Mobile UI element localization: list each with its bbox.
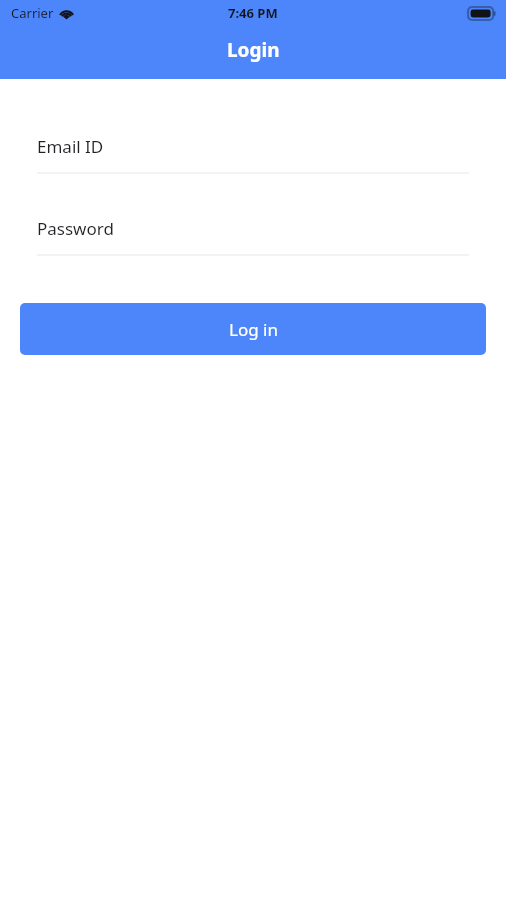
other: Battery full <box>468 7 496 20</box>
other: Wi-Fi signal <box>59 8 74 19</box>
staticText: Email ID <box>37 135 104 158</box>
button[interactable]: Log in <box>20 303 486 355</box>
staticText: Password <box>37 217 114 240</box>
staticText: Carrier <box>11 4 54 22</box>
staticText: Log in <box>229 318 278 341</box>
button[interactable]: Email ID <box>37 129 469 174</box>
staticText: Login <box>227 37 280 63</box>
staticText: 7:46 PM <box>228 4 278 22</box>
button[interactable]: Password <box>37 211 469 256</box>
